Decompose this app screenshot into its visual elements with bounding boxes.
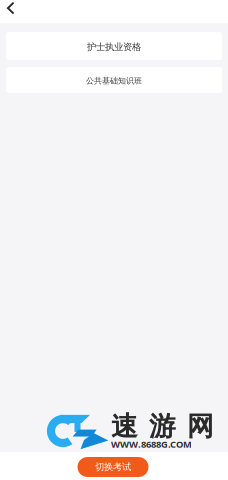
button[interactable]: Back [0, 0, 24, 23]
button[interactable]: 切换考试 [77, 457, 148, 477]
staticText: 公共基础知识班 [86, 76, 142, 86]
staticText: 护士执业资格 [87, 41, 141, 53]
staticText: WWW.8688G.COM [111, 438, 192, 450]
staticText: 速游网 [111, 410, 214, 443]
staticText: 切换考试 [95, 461, 131, 473]
button[interactable]: 护士执业资格 [6, 32, 222, 60]
button[interactable]: 公共基础知识班 [6, 67, 222, 93]
